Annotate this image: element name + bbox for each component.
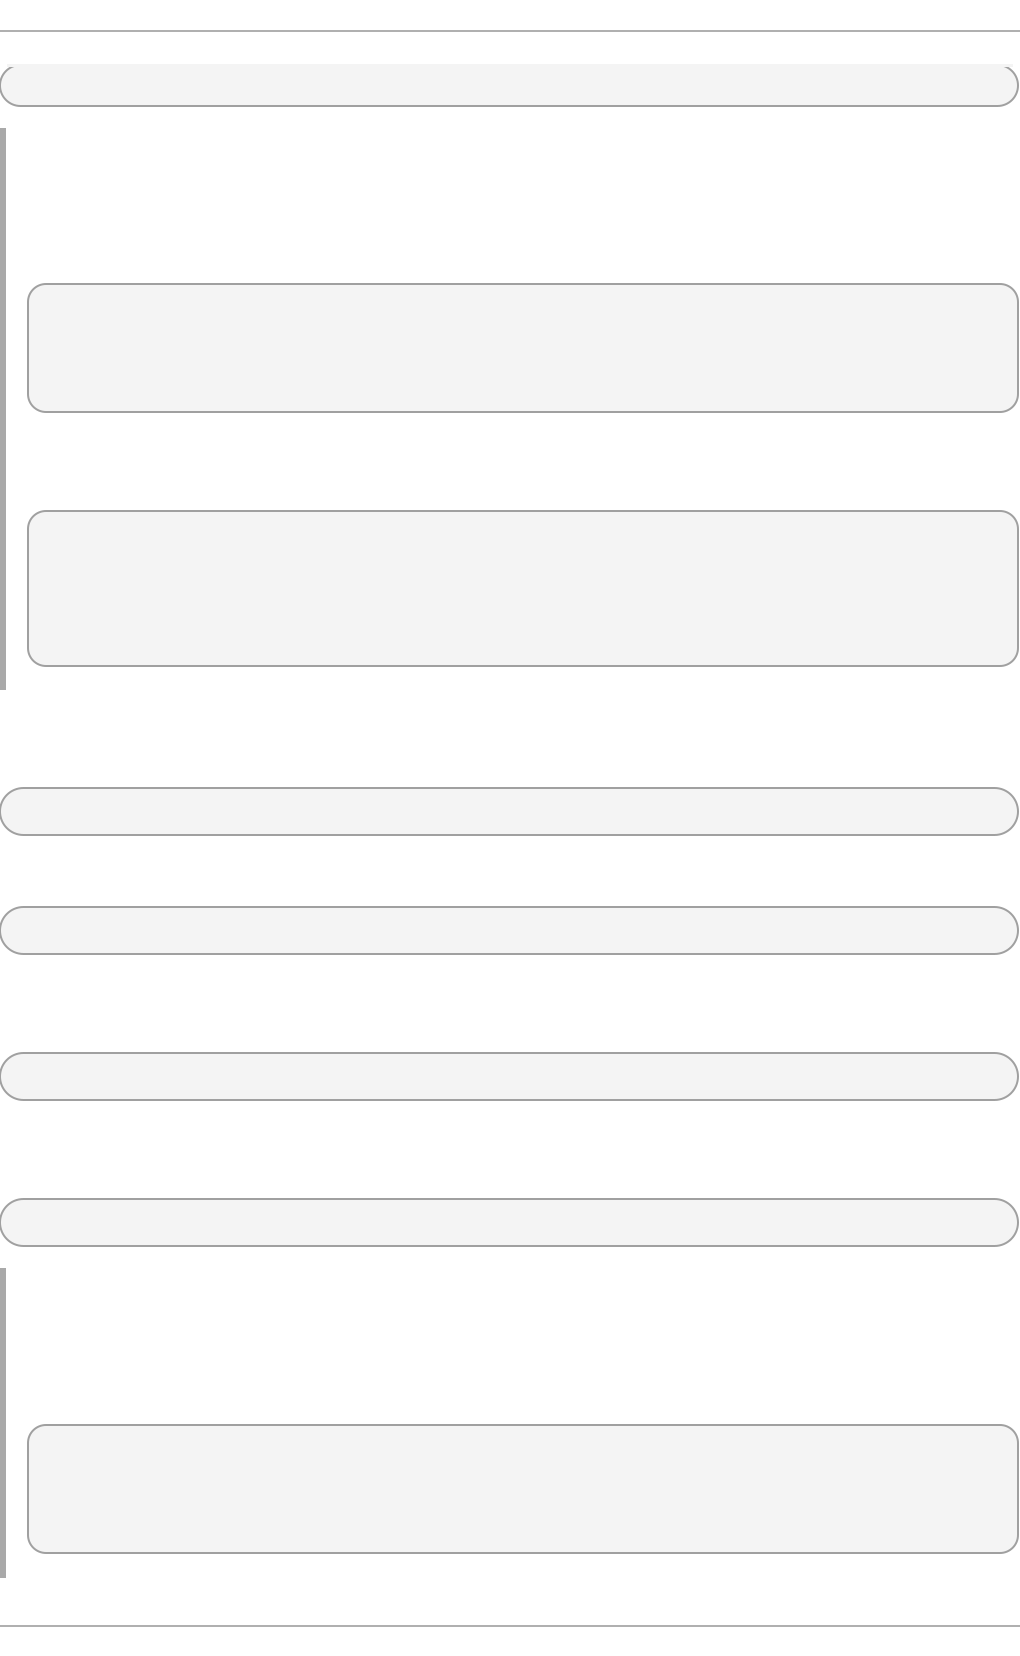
button[interactable]: List row xyxy=(0,907,1020,954)
button[interactable]: List row xyxy=(0,1053,1020,1100)
button[interactable]: Featured card xyxy=(0,284,1020,412)
button[interactable]: Featured card xyxy=(0,1425,1020,1553)
button[interactable]: List row xyxy=(0,788,1020,835)
button[interactable]: List row xyxy=(0,1199,1020,1246)
button[interactable]: Featured card xyxy=(0,511,1020,666)
button[interactable]: Search xyxy=(0,65,1020,106)
